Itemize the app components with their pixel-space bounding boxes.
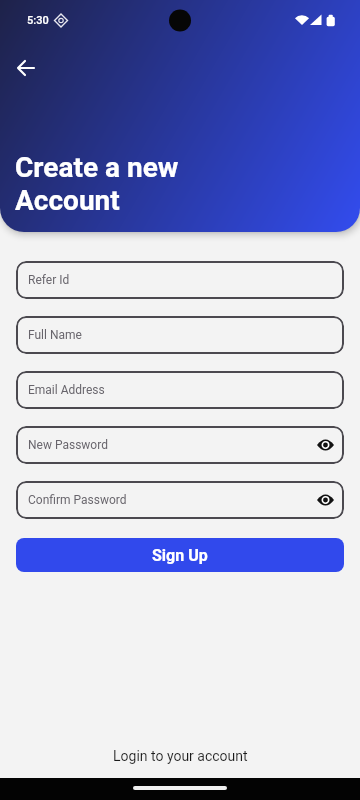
staticText: Sign Up	[152, 546, 208, 565]
staticText: Login to your account	[113, 748, 248, 764]
button[interactable]: New Password	[16, 426, 344, 464]
button[interactable]: Confirm Password	[16, 481, 344, 519]
staticText: Create a new Account	[15, 151, 179, 217]
staticText: Confirm Password	[28, 493, 127, 507]
staticText: New Password	[28, 438, 108, 452]
staticText: Email Address	[28, 383, 105, 397]
button[interactable]: Sign Up	[16, 538, 344, 572]
staticText: Refer Id	[28, 273, 70, 287]
button[interactable]: Refer Id	[16, 261, 344, 299]
button[interactable]: Login to your account	[105, 744, 256, 768]
staticText: 5:30	[27, 14, 49, 27]
button[interactable]: Email Address	[16, 371, 344, 409]
button[interactable]	[10, 52, 42, 84]
button[interactable]: Full Name	[16, 316, 344, 354]
staticText: Full Name	[28, 328, 82, 342]
